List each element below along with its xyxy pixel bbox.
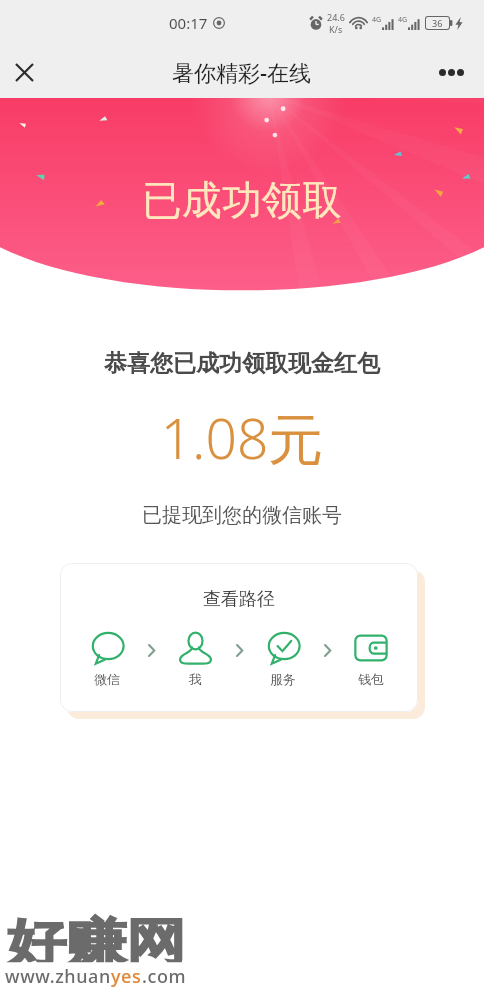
staticText: 36 [432, 17, 443, 29]
staticText: 微信 [94, 671, 120, 687]
button[interactable]: More options [427, 48, 475, 96]
staticText: yes [111, 964, 142, 989]
staticText: 钱包 [358, 671, 384, 687]
staticText: .com [142, 964, 187, 989]
button[interactable]: 我 [169, 630, 221, 687]
staticText: 我 [189, 671, 202, 687]
staticText: 暑你精彩-在线 [172, 57, 312, 87]
staticText: 已提现到您的微信账号 [0, 503, 484, 528]
button[interactable]: Close [0, 48, 48, 96]
staticText: 4G [398, 15, 408, 25]
staticText: 已成功领取 [142, 175, 342, 225]
button[interactable]: 服务 [257, 630, 309, 687]
button[interactable]: 查看路径 [60, 563, 418, 712]
staticText: 好赚网 [6, 912, 186, 962]
staticText: 4G [372, 15, 382, 25]
button[interactable]: 钱包 [345, 630, 397, 687]
staticText: www.zhuan [5, 964, 111, 989]
staticText: K/s [329, 23, 343, 35]
staticText: 查看路径 [203, 588, 275, 611]
staticText: 00:17 [169, 13, 208, 33]
staticText: 1.08元 [0, 400, 484, 475]
staticText: 恭喜您已成功领取现金红包 [0, 349, 484, 378]
button[interactable]: 微信 [81, 630, 133, 687]
staticText: 服务 [270, 671, 296, 687]
staticText: 24.6 [327, 11, 345, 23]
